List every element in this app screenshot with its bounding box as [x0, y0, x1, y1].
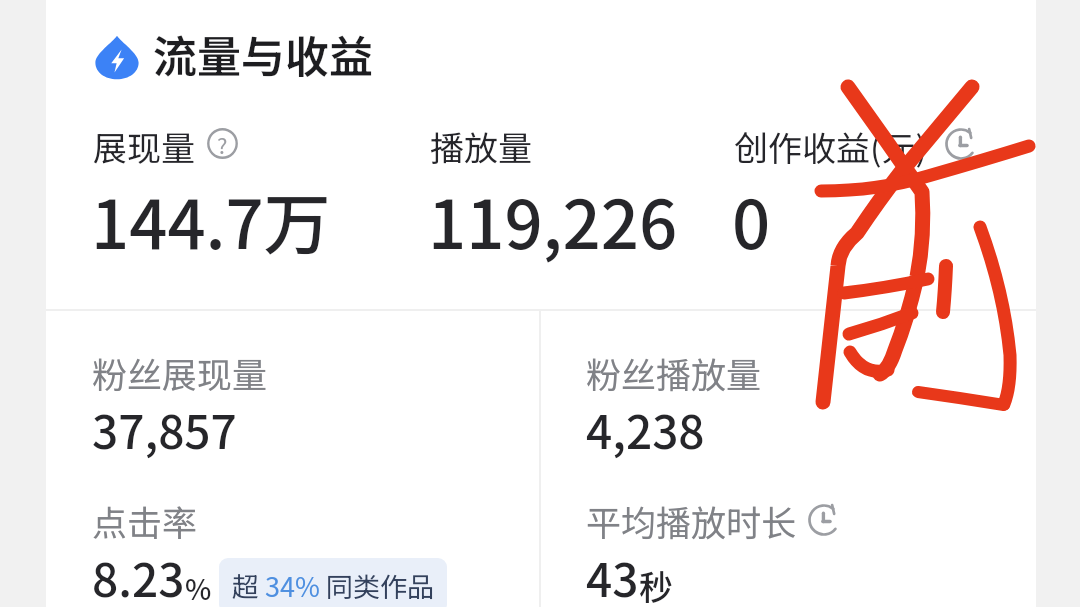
staticText: 点击率 — [92, 495, 198, 546]
button[interactable] — [78, 336, 528, 466]
staticText: 流量与收益 — [153, 22, 373, 86]
button[interactable] — [570, 336, 1020, 466]
staticText: 创作收益(元) — [734, 122, 927, 171]
staticText: 37,857 — [92, 396, 237, 463]
button[interactable]: Earnings history — [941, 124, 981, 164]
staticText: 119,226 — [428, 171, 678, 268]
staticText: 展现量 — [93, 122, 195, 171]
staticText: 43 — [586, 544, 639, 607]
staticText: 秒 — [639, 561, 673, 607]
staticText: 粉丝展现量 — [92, 347, 268, 398]
button[interactable] — [570, 484, 1020, 607]
staticText: 144.7万 — [91, 171, 331, 268]
button[interactable] — [78, 112, 408, 262]
staticText: 粉丝播放量 — [586, 347, 762, 398]
staticText: 平均播放时长 — [586, 495, 797, 546]
staticText: ? — [217, 128, 228, 160]
button[interactable]: What is impressions? — [203, 124, 242, 163]
button[interactable] — [78, 484, 528, 607]
button[interactable] — [415, 112, 715, 262]
button[interactable]: 超 34% 同类作品 — [219, 558, 447, 607]
staticText: 播放量 — [430, 122, 532, 171]
button[interactable] — [720, 112, 1020, 262]
staticText: 8.23 — [92, 544, 185, 607]
staticText: 0 — [732, 171, 771, 268]
staticText: % — [185, 568, 212, 607]
button[interactable]: 流量与收益 — [80, 18, 400, 96]
staticText: 超 34% 同类作品 — [232, 566, 434, 605]
button[interactable]: Average watch time info — [804, 500, 844, 540]
staticText: 4,238 — [586, 396, 705, 463]
